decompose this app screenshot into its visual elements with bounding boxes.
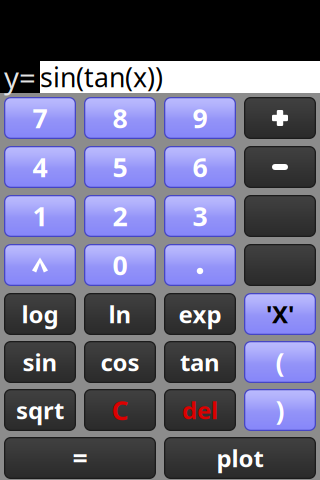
button[interactable]: plot bbox=[164, 437, 316, 479]
staticText: 6 bbox=[192, 149, 207, 185]
button[interactable]: 0 bbox=[84, 244, 156, 286]
staticText: ( bbox=[275, 344, 284, 380]
staticText: 1 bbox=[32, 198, 47, 234]
staticText: exp bbox=[178, 298, 221, 330]
button[interactable]: del bbox=[164, 389, 236, 431]
button[interactable]: divide bbox=[244, 244, 316, 286]
staticText: 'X' bbox=[266, 298, 294, 330]
staticText: 8 bbox=[112, 100, 127, 136]
staticText: cos bbox=[100, 346, 139, 378]
button[interactable]: 'X' bbox=[244, 293, 316, 335]
button[interactable]: 5 bbox=[84, 146, 156, 188]
staticText: del bbox=[182, 394, 218, 426]
button[interactable]: decimal point bbox=[164, 244, 236, 286]
button[interactable]: = bbox=[4, 437, 156, 479]
button[interactable]: C bbox=[84, 389, 156, 431]
button[interactable]: power bbox=[4, 244, 76, 286]
staticText: sqrt bbox=[16, 394, 64, 426]
button[interactable]: 8 bbox=[84, 97, 156, 139]
button[interactable]: ( bbox=[244, 341, 316, 383]
staticText: ln bbox=[108, 298, 131, 330]
button[interactable]: 1 bbox=[4, 195, 76, 237]
button[interactable]: sqrt bbox=[4, 389, 76, 431]
button[interactable]: 4 bbox=[4, 146, 76, 188]
staticText: 0 bbox=[112, 247, 127, 283]
staticText: 5 bbox=[112, 149, 127, 185]
button[interactable]: log bbox=[4, 293, 76, 335]
staticText: C bbox=[111, 392, 128, 428]
staticText: 2 bbox=[112, 198, 127, 234]
staticText: log bbox=[21, 298, 58, 330]
staticText: sin bbox=[22, 346, 57, 378]
staticText: tan bbox=[180, 346, 220, 378]
button[interactable]: minus bbox=[244, 146, 316, 188]
staticText: = bbox=[72, 440, 87, 476]
button[interactable]: tan bbox=[164, 341, 236, 383]
button[interactable]: ) bbox=[244, 389, 316, 431]
staticText: 7 bbox=[32, 100, 47, 136]
button[interactable]: 7 bbox=[4, 97, 76, 139]
staticText: 3 bbox=[192, 198, 207, 234]
button[interactable]: 6 bbox=[164, 146, 236, 188]
staticText: plot bbox=[216, 442, 263, 474]
button[interactable]: multiply bbox=[244, 195, 316, 237]
button[interactable]: exp bbox=[164, 293, 236, 335]
staticText: sin(tan(x)) bbox=[40, 59, 163, 95]
button[interactable]: 3 bbox=[164, 195, 236, 237]
button[interactable]: cos bbox=[84, 341, 156, 383]
staticText: y= bbox=[4, 57, 36, 96]
button[interactable]: ln bbox=[84, 293, 156, 335]
button[interactable]: plus bbox=[244, 97, 316, 139]
button[interactable]: 9 bbox=[164, 97, 236, 139]
staticText: 9 bbox=[192, 100, 207, 136]
button[interactable]: sin bbox=[4, 341, 76, 383]
button[interactable]: 2 bbox=[84, 195, 156, 237]
staticText: 4 bbox=[32, 149, 47, 185]
staticText: ) bbox=[275, 392, 284, 428]
